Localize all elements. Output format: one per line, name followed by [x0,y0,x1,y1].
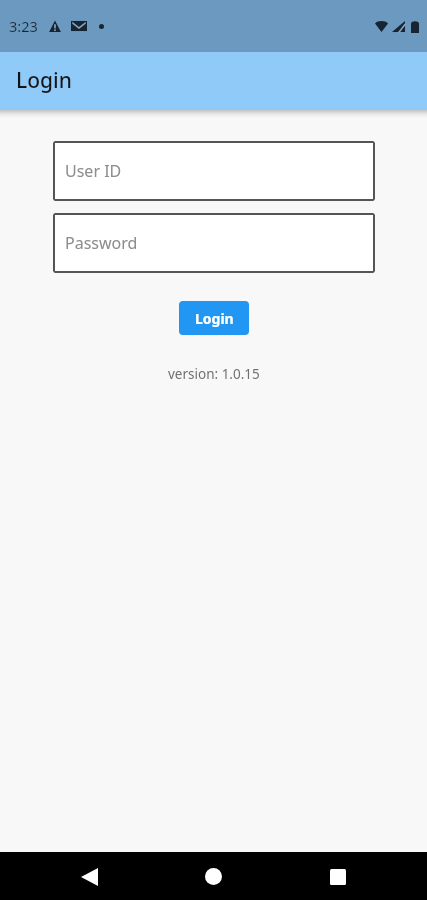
button[interactable]: User ID [53,141,375,201]
staticText: Login [195,309,234,328]
button[interactable]: Login [179,301,249,335]
button[interactable]: Password [53,213,375,273]
staticText: Password [65,232,138,254]
button[interactable]: Home [190,853,237,900]
staticText: 3:23 [9,16,38,36]
staticText: Login [16,66,72,95]
button[interactable]: Back [66,853,113,900]
staticText: User ID [65,160,122,182]
staticText: version: 1.0.15 [168,365,260,383]
button[interactable]: Recent apps [314,853,361,900]
